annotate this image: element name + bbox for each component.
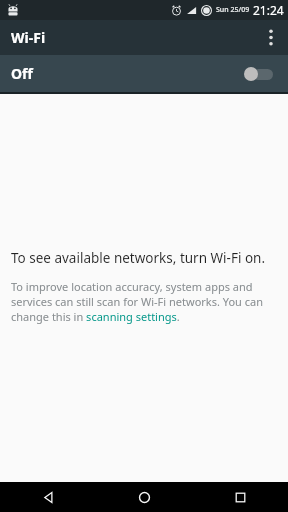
button[interactable]: Off bbox=[0, 55, 288, 92]
staticText: To improve location accuracy, system app… bbox=[11, 279, 278, 324]
other: Wi-Fi toggle, off bbox=[244, 64, 274, 84]
staticText: 21:24 bbox=[253, 2, 284, 18]
button[interactable]: More options bbox=[254, 20, 288, 55]
staticText: To see available networks, turn Wi-Fi on… bbox=[11, 249, 266, 267]
button[interactable]: Home bbox=[96, 482, 192, 512]
staticText: Sun 25/09 bbox=[216, 5, 250, 15]
button[interactable]: Back bbox=[0, 482, 96, 512]
staticText: Off bbox=[11, 64, 33, 83]
button[interactable]: Recent apps bbox=[192, 482, 288, 512]
staticText: Wi-Fi bbox=[11, 28, 46, 47]
